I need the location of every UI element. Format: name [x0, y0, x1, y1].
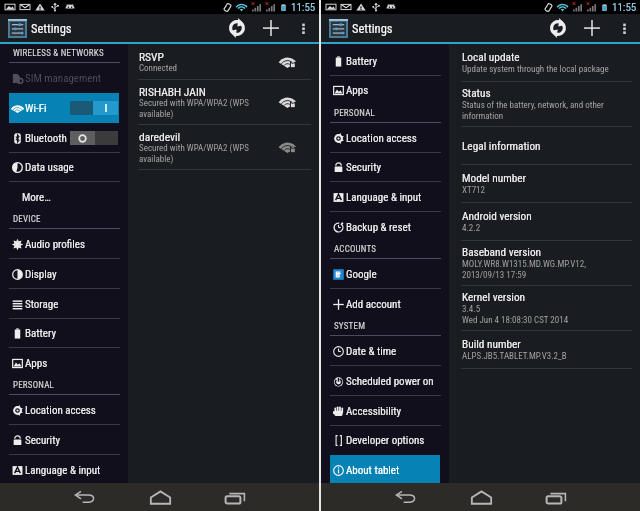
button[interactable]: Local update	[449, 44, 640, 82]
button[interactable]: SIM management	[0, 63, 128, 93]
staticText: MOLY.WR8.W1315.MD.WG.MP.V12,	[462, 259, 586, 270]
staticText: Apps	[25, 357, 48, 370]
staticText: Scheduled power on	[346, 375, 434, 388]
staticText: 2013/09/13 17:59	[462, 270, 527, 281]
button[interactable]: Language & input	[321, 182, 449, 212]
staticText: Security	[25, 434, 60, 447]
button[interactable]: More options	[287, 14, 319, 42]
button[interactable]: Date & time	[321, 336, 449, 366]
button[interactable]: Apps	[0, 348, 128, 378]
staticText: About tablet	[346, 464, 400, 477]
staticText: Connected	[139, 63, 178, 74]
staticText: Update system through the local package	[462, 64, 609, 75]
button[interactable]: Status	[449, 82, 640, 127]
staticText: Location access	[25, 404, 96, 417]
staticText: Local update	[462, 51, 520, 64]
button[interactable]: Recents	[524, 483, 588, 511]
staticText: RSVP	[139, 50, 164, 63]
staticText: 11:55	[612, 1, 637, 14]
staticText: daredevil	[139, 130, 181, 143]
button[interactable]: Baseband version	[449, 241, 640, 286]
button[interactable]: More…	[0, 182, 128, 212]
staticText: WIRELESS & NETWORKS	[13, 48, 104, 59]
staticText: Wed Jun 4 18:08:30 CST 2014	[462, 315, 569, 326]
staticText: Status	[462, 87, 491, 100]
staticText: Build number	[462, 338, 521, 351]
button[interactable]: Apps	[321, 75, 449, 105]
staticText: Legal information	[462, 140, 541, 153]
staticText: PERSONAL	[13, 380, 55, 391]
button[interactable]: Storage	[0, 289, 128, 319]
button[interactable]: Add account	[321, 289, 449, 319]
staticText: Language & input	[346, 191, 422, 204]
button[interactable]: Security	[321, 152, 449, 182]
button[interactable]: Legal information	[449, 127, 640, 165]
staticText: Android version	[462, 210, 532, 223]
staticText: More…	[22, 191, 51, 204]
button[interactable]: Build number	[449, 331, 640, 369]
button[interactable]: More options	[608, 14, 640, 42]
button[interactable]: Display	[0, 259, 128, 289]
staticText: Location access	[346, 132, 417, 145]
button[interactable]: Audio profiles	[0, 229, 128, 259]
staticText: Add account	[346, 298, 401, 311]
staticText: Settings	[352, 21, 393, 36]
button[interactable]: RSVP	[128, 44, 319, 80]
button[interactable]: Back	[53, 483, 117, 511]
button[interactable]: Data usage	[0, 152, 128, 182]
staticText: available)	[139, 154, 174, 165]
staticText: 4.2.2	[462, 223, 481, 234]
button[interactable]: Kernel version	[449, 286, 640, 331]
button[interactable]: Add network	[254, 14, 287, 42]
staticText: Secured with WPA/WPA2 (WPS	[139, 98, 249, 109]
staticText: SIM management	[25, 72, 102, 85]
staticText: Model number	[462, 172, 527, 185]
button[interactable]: Android version	[449, 203, 640, 241]
button[interactable]: Back	[374, 483, 438, 511]
staticText: Security	[346, 161, 381, 174]
staticText: PERSONAL	[334, 108, 376, 119]
button[interactable]: Recents	[203, 483, 267, 511]
button[interactable]: Language & input	[0, 455, 128, 485]
button[interactable]: Home	[128, 483, 192, 511]
staticText: Developer options	[346, 434, 425, 447]
staticText: 11:55	[291, 1, 316, 14]
staticText: Bluetooth	[25, 132, 67, 145]
button[interactable]: Model number	[449, 165, 640, 203]
staticText: Secured with WPA/WPA2 (WPS	[139, 143, 249, 154]
button[interactable]: Security	[0, 425, 128, 455]
staticText: available)	[139, 109, 174, 120]
button[interactable]: Sync	[220, 14, 254, 42]
staticText: SYSTEM	[334, 321, 366, 332]
staticText: information	[462, 111, 504, 122]
staticText: Display	[25, 268, 57, 281]
button[interactable]: Home	[449, 483, 513, 511]
staticText: Accessibility	[346, 405, 402, 418]
staticText: ACCOUNTS	[334, 244, 377, 255]
button[interactable]: RISHABH JAIN	[128, 80, 319, 125]
button[interactable]: Add network	[575, 14, 608, 42]
button[interactable]: Google	[321, 259, 449, 289]
button[interactable]: Backup & reset	[321, 212, 449, 242]
staticText: ALPS.JB5.TABLET.MP.V3.2_B	[462, 351, 567, 362]
staticText: Status of the battery, network, and othe…	[462, 100, 604, 111]
staticText: Battery	[25, 327, 56, 340]
button[interactable]: Wi-Fi	[0, 93, 128, 123]
button[interactable]: Developer options	[321, 425, 449, 455]
staticText: Backup & reset	[346, 221, 411, 234]
staticText: XT712	[462, 185, 485, 196]
button[interactable]: Accessibility	[321, 396, 449, 426]
button[interactable]: Location access	[321, 123, 449, 153]
staticText: Kernel version	[462, 291, 526, 304]
button[interactable]: Bluetooth	[0, 123, 128, 153]
button[interactable]: Scheduled power on	[321, 366, 449, 396]
button[interactable]: Location access	[0, 395, 128, 425]
button[interactable]: Battery	[321, 46, 449, 76]
staticText: Apps	[346, 84, 369, 97]
button[interactable]: Sync	[541, 14, 575, 42]
button[interactable]: About tablet	[321, 455, 449, 485]
staticText: Google	[346, 268, 377, 281]
button[interactable]: Battery	[0, 318, 128, 348]
staticText: Battery	[346, 55, 377, 68]
button[interactable]: daredevil	[128, 125, 319, 170]
